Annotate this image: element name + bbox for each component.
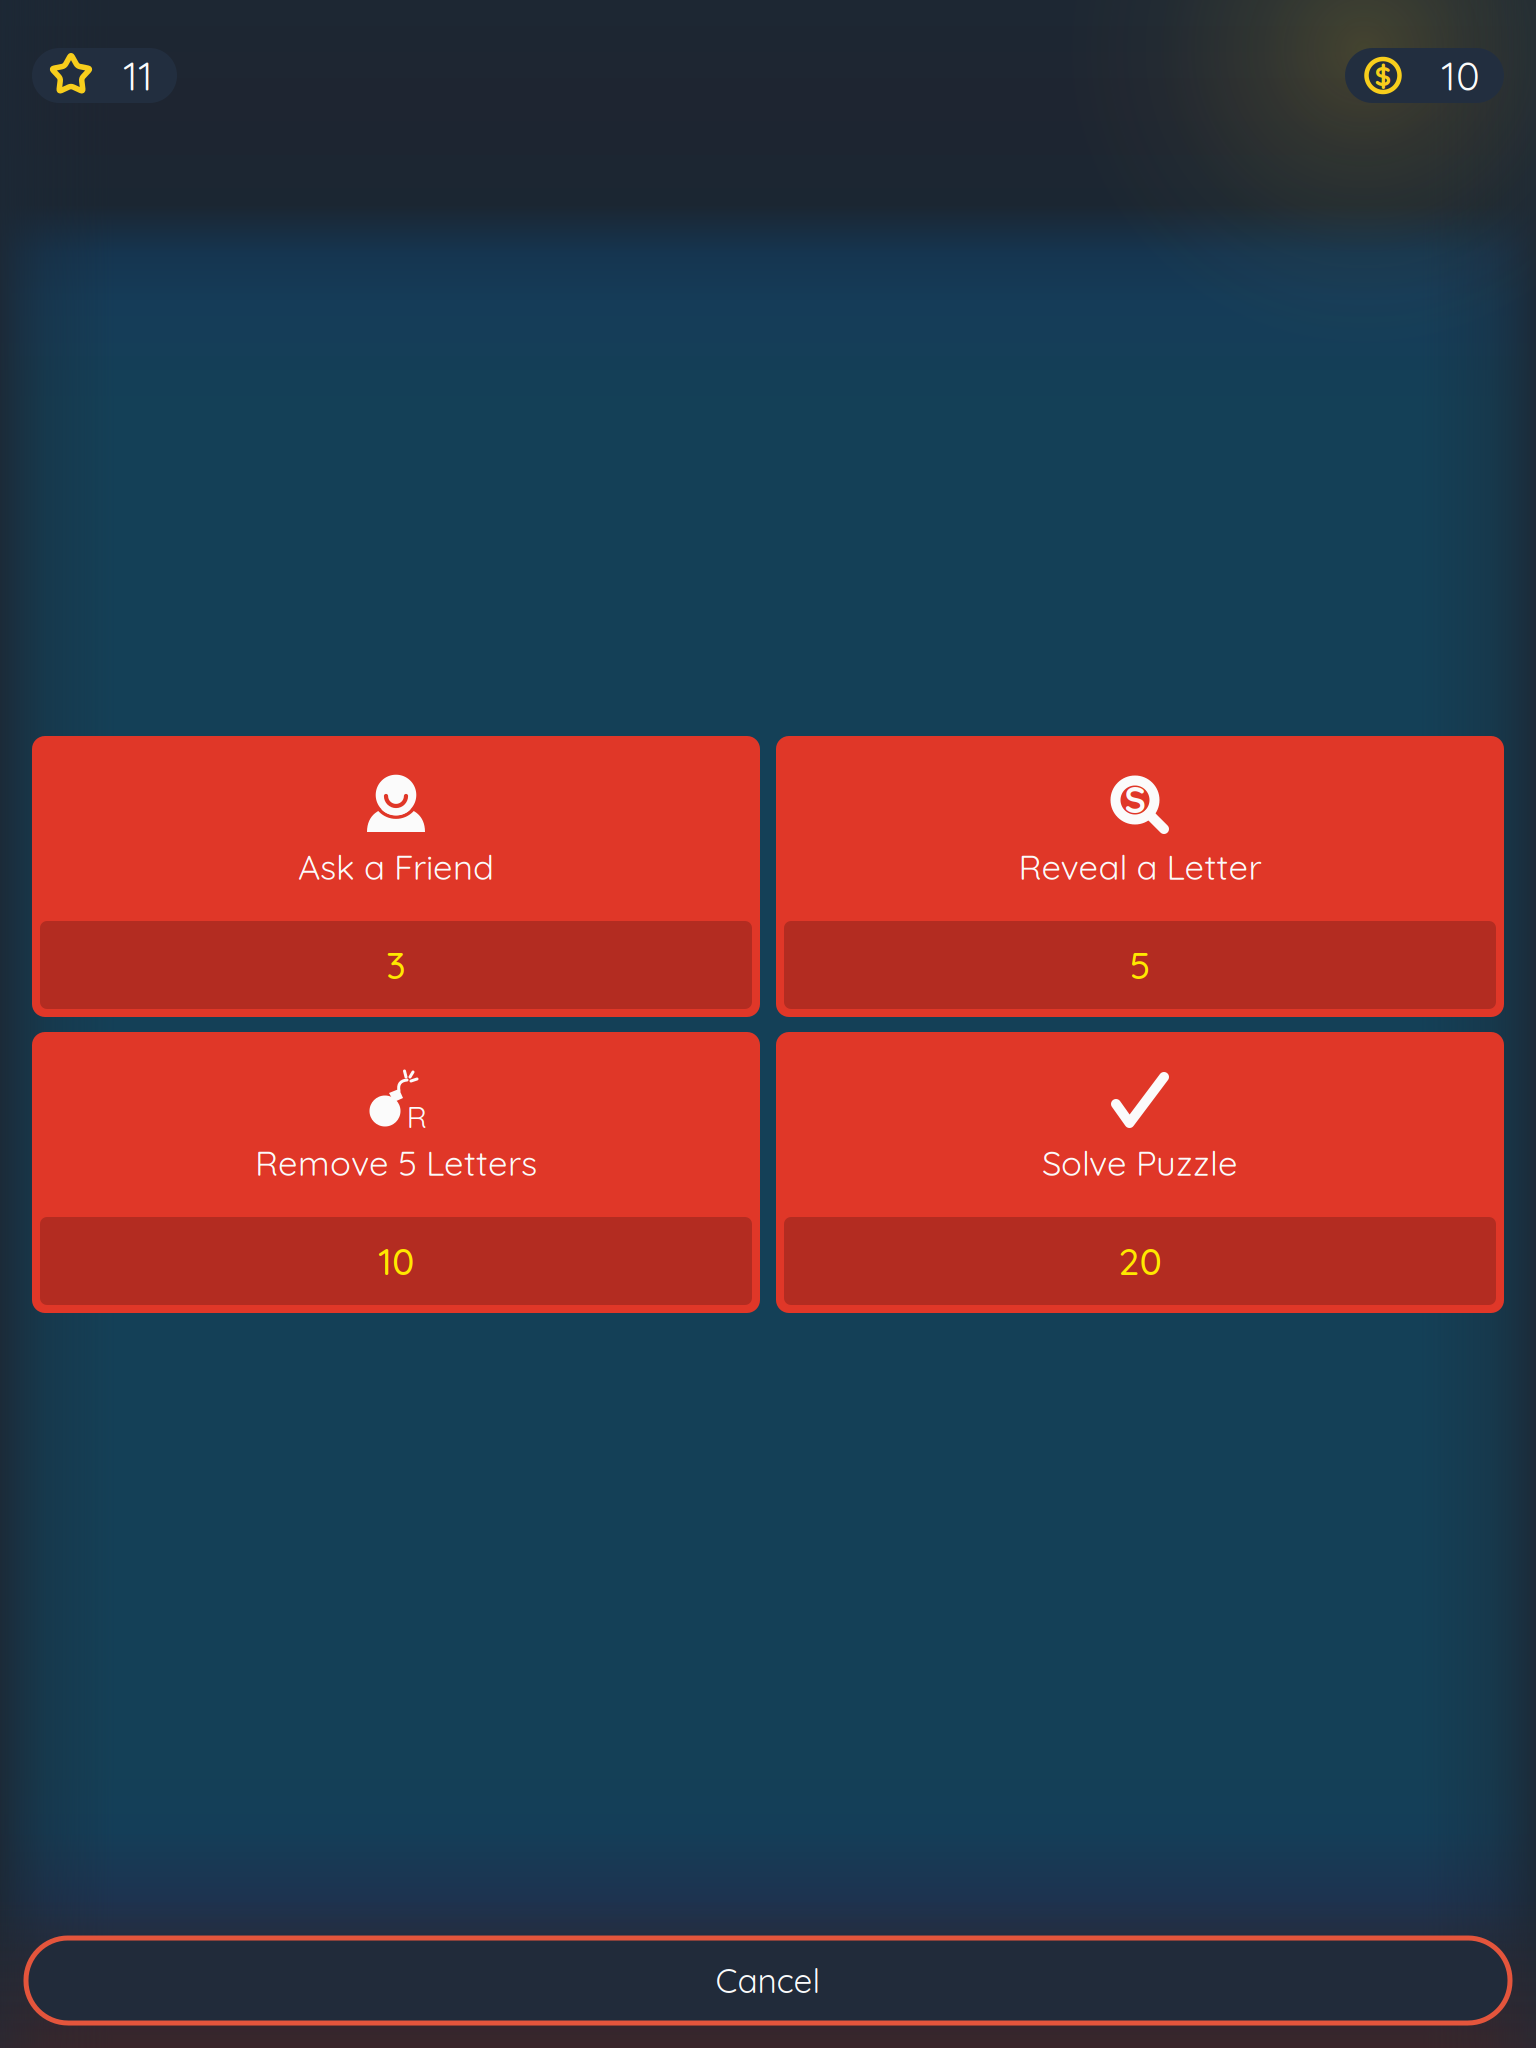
staticText: 20 [1118,1238,1161,1284]
staticText: Remove 5 Letters [255,1141,537,1184]
staticText: 5 [1129,942,1150,988]
button[interactable]: Cancel [26,1938,1510,2023]
staticText: 3 [386,942,406,988]
button[interactable]: R [32,1032,760,1313]
staticText: Reveal a Letter [1018,845,1261,888]
button[interactable]: Ask a Friend [32,736,760,1017]
staticText: Cancel [715,1960,820,2001]
staticText: R [406,1097,427,1136]
staticText: S [1124,777,1145,822]
button[interactable]: Stars [32,48,177,103]
staticText: 11 [123,50,153,100]
button[interactable]: Coins [1345,48,1504,103]
staticText: Ask a Friend [298,845,494,888]
staticText: 10 [1441,50,1480,100]
staticText: Solve Puzzle [1042,1141,1238,1184]
staticText: $ [1374,58,1391,93]
staticText: 10 [378,1238,414,1284]
button[interactable]: S [776,736,1504,1017]
button[interactable]: Solve Puzzle [776,1032,1504,1313]
